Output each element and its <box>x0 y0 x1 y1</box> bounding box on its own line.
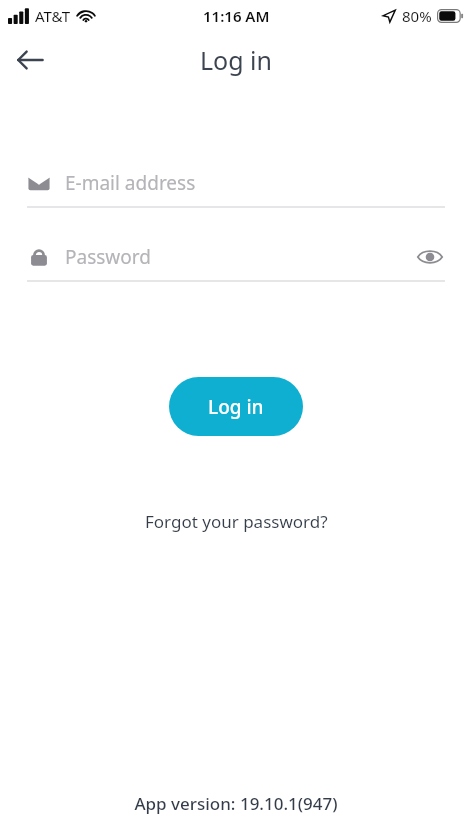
staticText: App version: 19.10.1(947) <box>134 792 338 815</box>
staticText: 80% <box>402 6 432 26</box>
staticText: Log in <box>200 43 273 77</box>
button[interactable]: E-mail address <box>0 160 472 206</box>
staticText: E-mail address <box>65 170 445 196</box>
button[interactable]: Password <box>0 234 472 280</box>
staticText: Password <box>65 244 415 270</box>
staticText: Forgot your password? <box>145 510 328 533</box>
staticText: AT&T <box>35 6 70 26</box>
button[interactable]: Back <box>6 36 54 84</box>
button[interactable]: Show password <box>415 242 445 272</box>
button[interactable]: Forgot your password? <box>133 504 340 539</box>
staticText: 11:16 AM <box>203 6 270 26</box>
staticText: Log in <box>208 394 264 420</box>
button[interactable]: Log in <box>169 377 303 436</box>
